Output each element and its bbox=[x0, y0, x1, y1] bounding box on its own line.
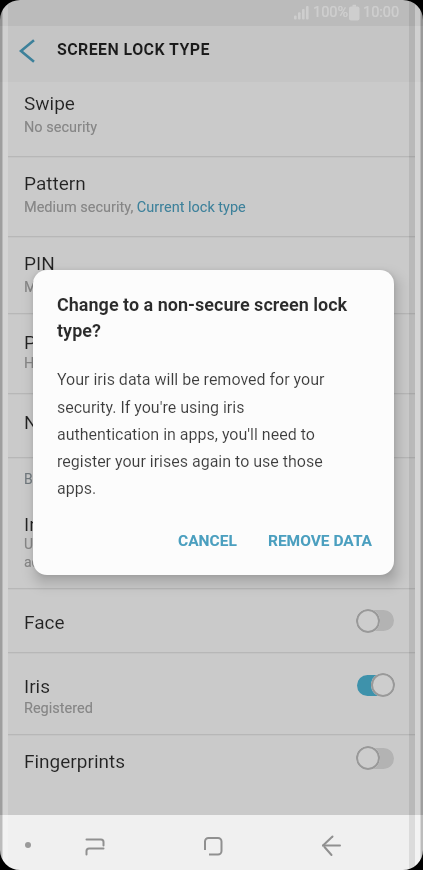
staticText: Pattern bbox=[24, 172, 86, 194]
staticText: Fingerprints bbox=[24, 750, 126, 772]
staticText: PIN bbox=[24, 252, 55, 274]
staticText: Use both your face and irises for better bbox=[24, 536, 266, 552]
button[interactable]: CANCEL bbox=[166, 522, 250, 562]
button[interactable]: Intelligent Scan bbox=[0, 504, 423, 588]
staticText: accuracy and security bbox=[24, 554, 160, 570]
staticText: Password bbox=[24, 331, 108, 353]
button[interactable]: Password bbox=[0, 325, 423, 393]
button[interactable]: Pattern bbox=[0, 166, 423, 236]
staticText: Face bbox=[24, 611, 65, 633]
staticText: REMOVE DATA bbox=[268, 532, 373, 550]
button[interactable] bbox=[310, 820, 355, 865]
staticText: Swipe bbox=[24, 92, 75, 114]
staticText: Intelligent Scan bbox=[24, 513, 155, 535]
button[interactable] bbox=[357, 748, 394, 769]
staticText: Medium security, Current lock type bbox=[24, 199, 246, 216]
button[interactable] bbox=[190, 820, 235, 865]
staticText: 100% bbox=[313, 4, 349, 21]
button[interactable] bbox=[75, 820, 120, 865]
staticText: No security bbox=[24, 119, 98, 136]
staticText: SCREEN LOCK TYPE bbox=[57, 40, 210, 59]
button[interactable]: Face bbox=[0, 600, 423, 652]
staticText: Medium security bbox=[24, 279, 132, 296]
button[interactable]: Swipe bbox=[0, 86, 423, 156]
staticText: Iris bbox=[24, 675, 51, 697]
button[interactable]: Iris bbox=[0, 660, 423, 734]
staticText: CANCEL bbox=[178, 532, 237, 550]
staticText: Your iris data will be removed for your … bbox=[57, 370, 325, 498]
button[interactable]: REMOVE DATA bbox=[256, 522, 382, 562]
staticText: 10:00 bbox=[363, 4, 400, 21]
button[interactable] bbox=[357, 610, 394, 631]
staticText: None bbox=[24, 411, 69, 433]
button[interactable]: None bbox=[0, 393, 423, 457]
button[interactable] bbox=[8, 34, 48, 74]
staticText: Change to a non-secure screen lock type? bbox=[57, 294, 348, 341]
button[interactable] bbox=[357, 675, 394, 696]
staticText: Biometrics bbox=[24, 471, 92, 487]
button[interactable]: PIN bbox=[0, 246, 423, 313]
staticText: High security bbox=[24, 355, 109, 372]
staticText: Registered bbox=[24, 700, 93, 717]
button[interactable]: Fingerprints bbox=[0, 740, 423, 800]
